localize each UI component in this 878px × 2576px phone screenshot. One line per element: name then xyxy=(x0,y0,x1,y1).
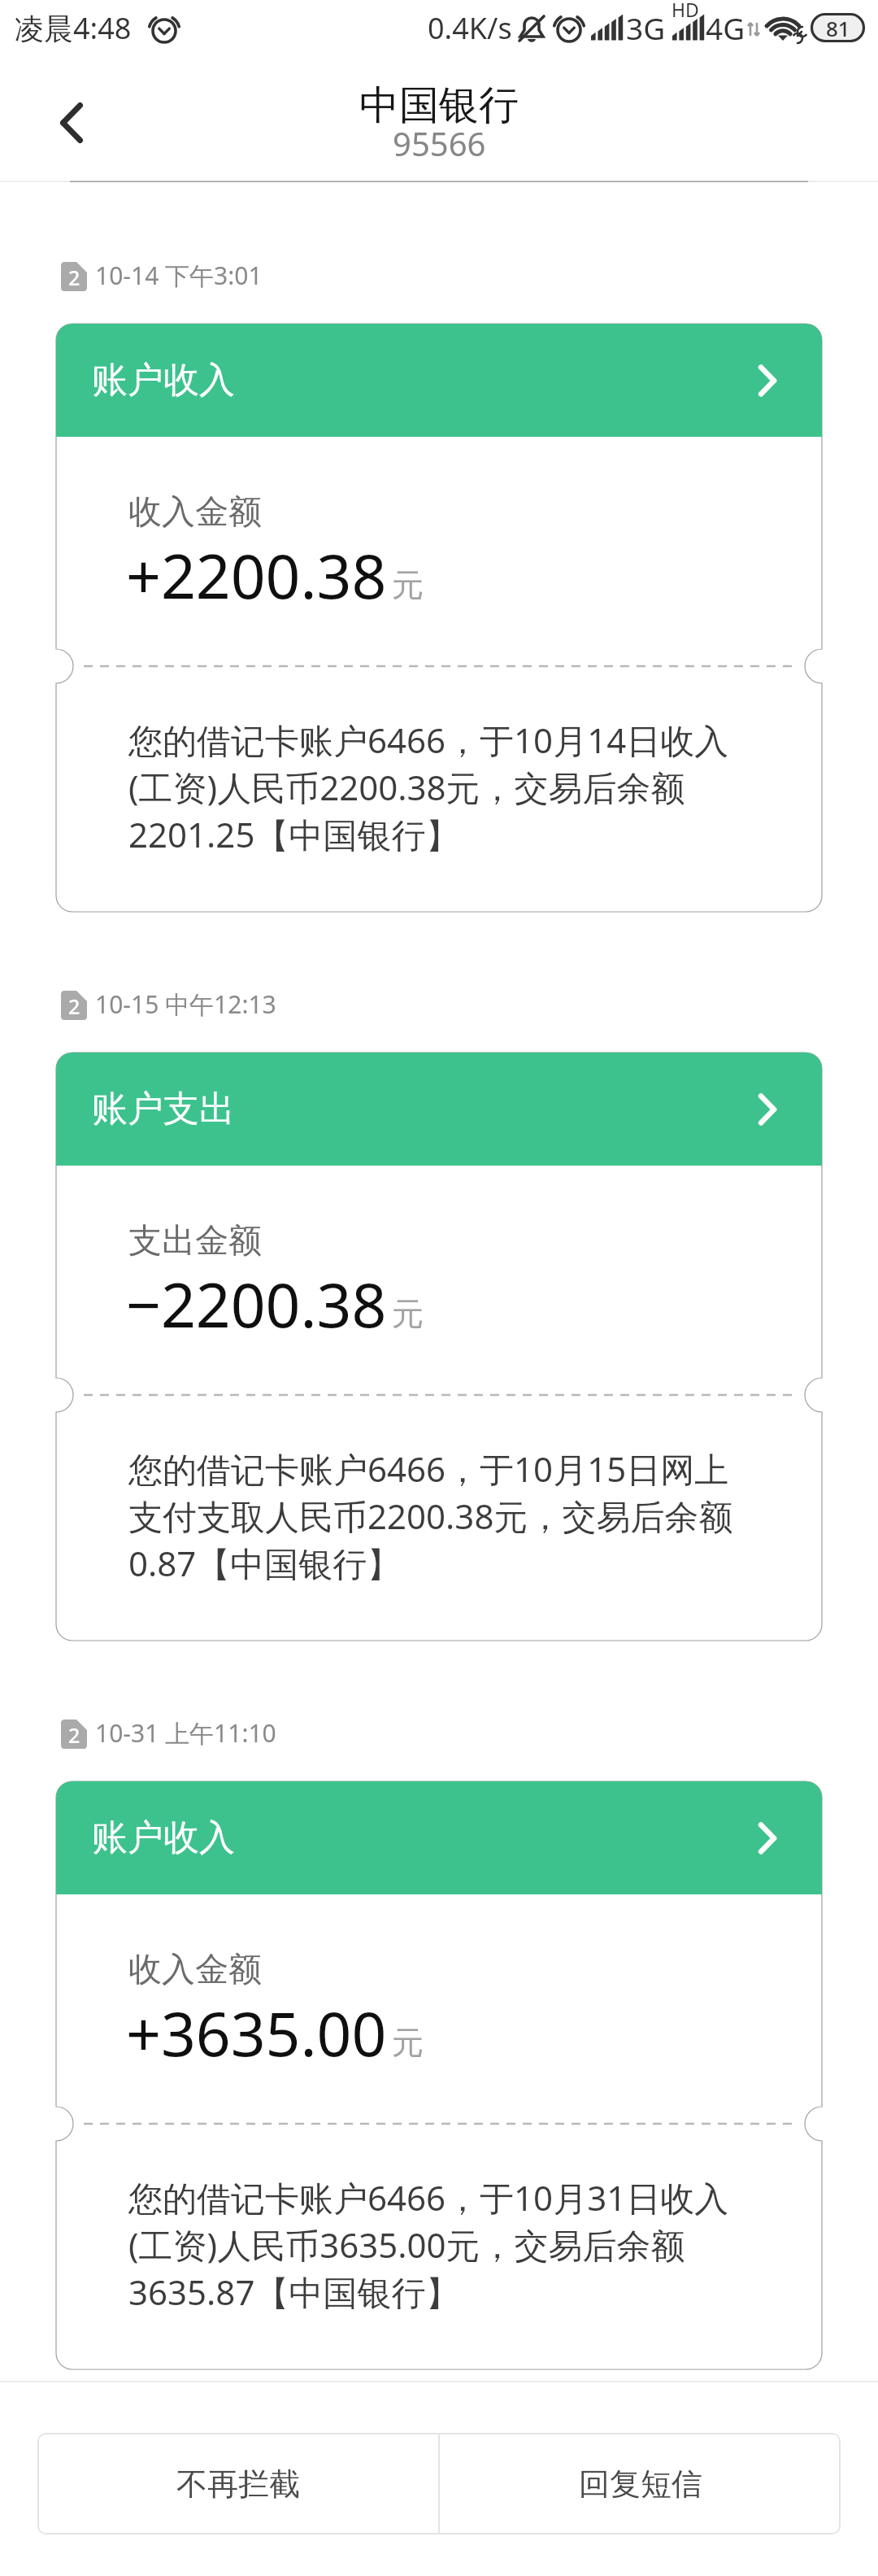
staticText: 您的借记卡账户6466，于10月14日收入(工资)人民币2200.38元，交易后… xyxy=(128,717,738,857)
staticText: 不再拦截 xyxy=(176,2465,300,2504)
button[interactable]: 账户支出 xyxy=(0,1053,878,1166)
button[interactable]: 账户收入 xyxy=(0,324,878,437)
staticText: 2 xyxy=(68,1721,80,1749)
staticText: 元 xyxy=(392,2023,424,2063)
staticText: 3G xyxy=(626,7,666,48)
staticText: 凌晨4:48 xyxy=(15,8,132,48)
button[interactable]: 回复短信 xyxy=(440,2433,841,2535)
staticText: 10-14 下午3:01 xyxy=(95,259,263,292)
staticText: 0.4K/s xyxy=(428,8,512,48)
button[interactable]: Back xyxy=(33,80,110,157)
button[interactable]: 账户收入 xyxy=(0,1781,878,1894)
staticText: HD xyxy=(672,0,699,22)
staticText: 95566 xyxy=(393,121,486,165)
staticText: 支出金额 xyxy=(128,1220,262,1262)
staticText: 中国银行 xyxy=(359,81,519,131)
staticText: 2 xyxy=(68,992,80,1020)
staticText: 元 xyxy=(392,1294,424,1334)
staticText: +3635.00 xyxy=(126,1991,387,2074)
staticText: 您的借记卡账户6466，于10月31日收入(工资)人民币3635.00元，交易后… xyxy=(128,2174,738,2315)
staticText: 账户收入 xyxy=(92,1815,235,1860)
staticText: 2 xyxy=(68,264,80,291)
staticText: 收入金额 xyxy=(128,491,262,534)
staticText: −2200.38 xyxy=(126,1262,387,1345)
staticText: 4G xyxy=(706,7,745,48)
staticText: 您的借记卡账户6466，于10月15日网上支付支取人民币2200.38元，交易后… xyxy=(128,1445,738,1586)
staticText: 收入金额 xyxy=(128,1949,262,1991)
staticText: 10-15 中午12:13 xyxy=(95,987,276,1021)
staticText: 10-31 上午11:10 xyxy=(95,1716,276,1750)
staticText: 81 xyxy=(826,14,850,42)
staticText: 回复短信 xyxy=(579,2465,702,2504)
staticText: +2200.38 xyxy=(126,534,387,617)
staticText: 账户收入 xyxy=(92,358,235,403)
button[interactable]: 不再拦截 xyxy=(37,2433,438,2535)
staticText: 元 xyxy=(392,565,424,605)
staticText: 账户支出 xyxy=(92,1087,235,1131)
